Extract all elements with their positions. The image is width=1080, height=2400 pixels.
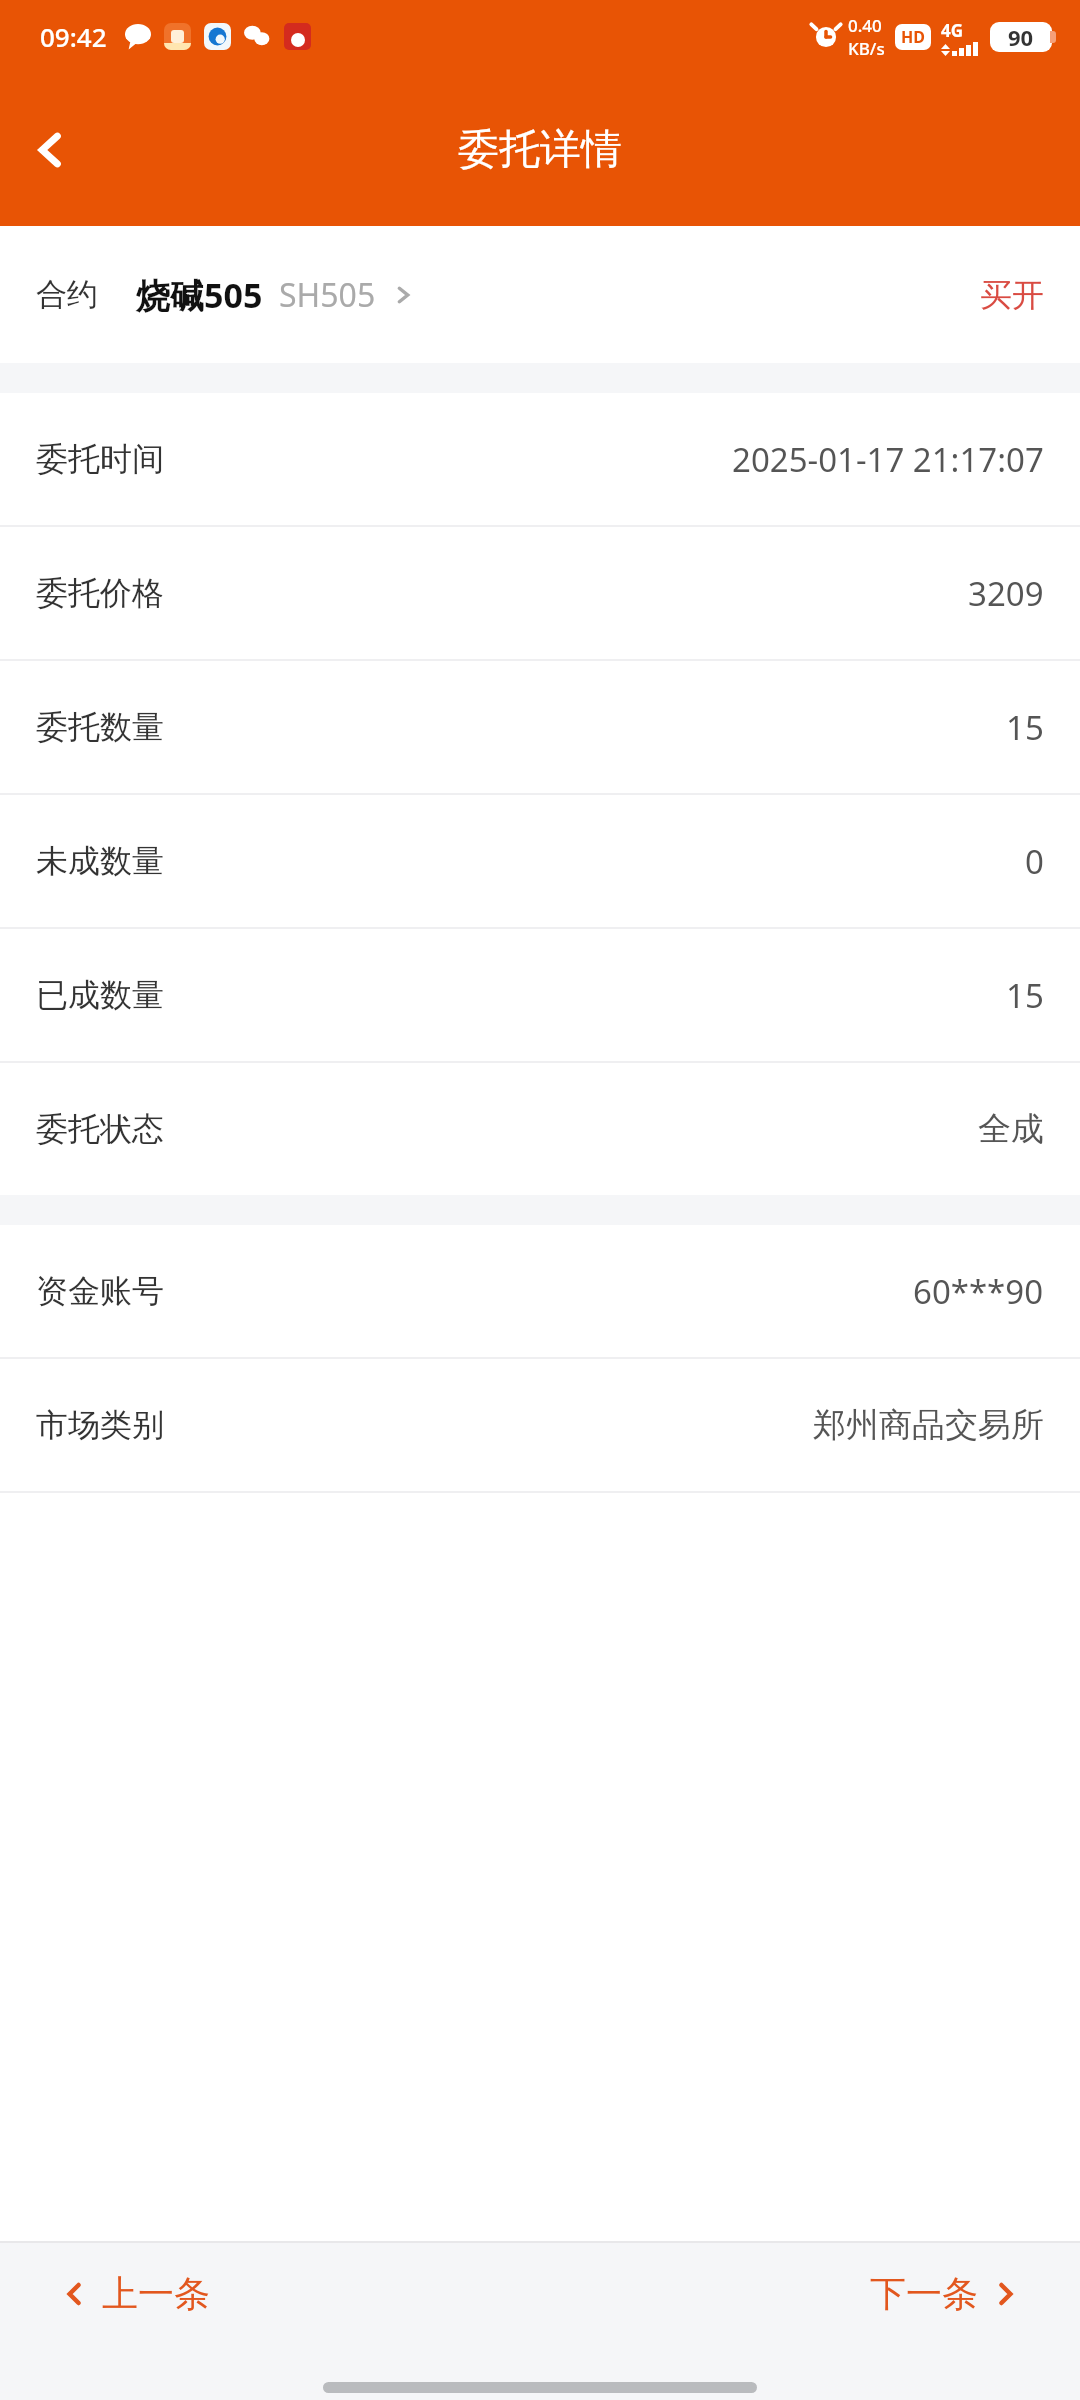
- staticText: 资金账号: [36, 1271, 164, 1311]
- button[interactable]: 资金账号: [0, 1225, 1080, 1357]
- staticText: 0.40: [848, 14, 882, 37]
- button[interactable]: 未成数量: [0, 795, 1080, 927]
- staticText: 市场类别: [36, 1405, 164, 1445]
- staticText: 全成: [978, 1108, 1044, 1150]
- staticText: 09:42: [40, 19, 107, 54]
- staticText: 下一条: [870, 2271, 978, 2316]
- button[interactable]: 委托数量: [0, 661, 1080, 793]
- button[interactable]: 委托状态: [0, 1063, 1080, 1195]
- button[interactable]: 市场类别: [0, 1359, 1080, 1491]
- staticText: 上一条: [102, 2271, 210, 2316]
- staticText: 60***90: [913, 1269, 1044, 1314]
- staticText: 买开: [980, 275, 1044, 315]
- staticText: SH505: [279, 273, 376, 317]
- button[interactable]: 委托价格: [0, 527, 1080, 659]
- staticText: 90: [1008, 22, 1034, 52]
- button[interactable]: Back: [0, 73, 100, 226]
- staticText: 委托时间: [36, 439, 164, 479]
- staticText: 15: [1006, 973, 1044, 1018]
- staticText: 委托详情: [458, 124, 622, 176]
- staticText: 委托价格: [36, 573, 164, 613]
- staticText: 0: [1025, 839, 1044, 884]
- staticText: 郑州商品交易所: [813, 1404, 1044, 1446]
- staticText: 4G: [941, 19, 964, 42]
- staticText: 未成数量: [36, 841, 164, 881]
- button[interactable]: 委托时间: [0, 393, 1080, 525]
- button[interactable]: 合约: [0, 226, 1080, 363]
- staticText: KB/s: [848, 37, 885, 60]
- staticText: 委托数量: [36, 707, 164, 747]
- staticText: 15: [1006, 705, 1044, 750]
- staticText: 委托状态: [36, 1109, 164, 1149]
- button[interactable]: 下一条: [870, 2271, 1020, 2316]
- staticText: HD: [901, 26, 925, 48]
- button[interactable]: 已成数量: [0, 929, 1080, 1061]
- staticText: 合约: [36, 275, 98, 314]
- staticText: 烧碱505: [136, 272, 263, 318]
- staticText: 2025-01-17 21:17:07: [732, 437, 1044, 482]
- staticText: 已成数量: [36, 975, 164, 1015]
- button[interactable]: 上一条: [60, 2271, 210, 2316]
- staticText: 3209: [968, 571, 1044, 616]
